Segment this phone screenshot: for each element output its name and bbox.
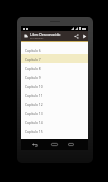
- button[interactable]: Up: [23, 33, 29, 39]
- button[interactable]: Play: [80, 31, 88, 41]
- staticText: Capítulo 6: [25, 48, 41, 52]
- button[interactable]: Capítulo 9: [21, 72, 88, 81]
- button[interactable]: Back: [30, 139, 39, 150]
- button[interactable]: Capítulo 11: [21, 90, 88, 99]
- staticText: Capítulo 13: [25, 111, 43, 115]
- staticText: Capítulo 12: [25, 102, 43, 106]
- button[interactable]: Capítulo 10: [21, 81, 88, 90]
- button[interactable]: Capítulo 13: [21, 108, 88, 117]
- staticText: Capítulo 8: [25, 66, 41, 70]
- button[interactable]: Capítulo 15: [21, 126, 88, 135]
- staticText: 30 Capítulos: [30, 37, 44, 40]
- button[interactable]: Capítulo 12: [21, 99, 88, 108]
- button[interactable]: Recents: [67, 139, 75, 150]
- staticText: Libro Desconocido: [30, 32, 61, 37]
- button[interactable]: Capítulo 6: [21, 45, 88, 54]
- staticText: Capítulo 10: [25, 84, 43, 88]
- button[interactable]: Home: [50, 139, 58, 150]
- button[interactable]: Capítulo 7: [21, 54, 88, 63]
- button[interactable]: Capítulo 14: [21, 117, 88, 126]
- staticText: Capítulo 14: [25, 120, 43, 124]
- button[interactable]: Share: [72, 31, 80, 41]
- staticText: Capítulo 9: [25, 75, 41, 79]
- staticText: Capítulo 11: [25, 93, 43, 97]
- button[interactable]: Capítulo 8: [21, 63, 88, 72]
- staticText: Capítulo 15: [25, 129, 43, 133]
- staticText: Capítulo 7: [25, 57, 41, 61]
